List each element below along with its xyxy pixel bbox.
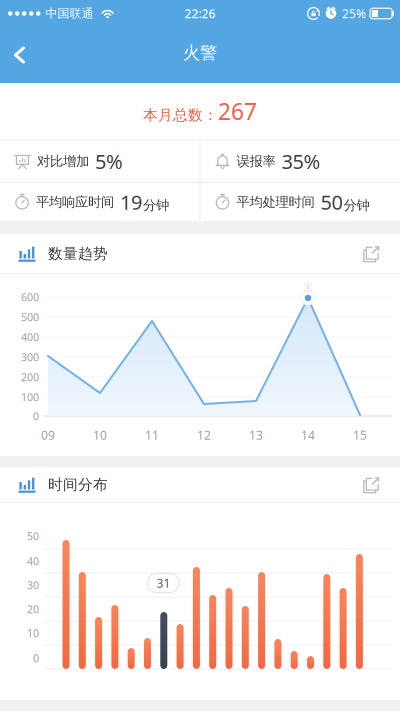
staticText: 数量趋势 — [48, 244, 108, 262]
staticText: 09 — [41, 427, 55, 443]
staticText: 平均响应时间 — [36, 194, 114, 210]
staticText: 火警 — [183, 42, 217, 64]
button[interactable] — [363, 475, 400, 493]
staticText: 19 — [120, 189, 142, 215]
staticText: 22:26 — [184, 5, 215, 21]
staticText: 100 — [21, 390, 39, 404]
staticText: 11 — [145, 427, 159, 443]
staticText: 0 — [33, 651, 39, 665]
button[interactable] — [0, 28, 26, 81]
staticText: 20 — [27, 602, 39, 616]
staticText: 误报率 — [236, 153, 275, 169]
staticText: 分钟 — [143, 197, 169, 213]
staticText: 50 — [320, 189, 342, 215]
staticText: 对比增加 — [37, 153, 89, 169]
staticText: 0 — [33, 409, 39, 423]
staticText: 10 — [93, 427, 107, 443]
staticText: 31 — [156, 575, 170, 591]
button[interactable] — [363, 244, 400, 262]
staticText: 平均处理时间 — [236, 194, 314, 210]
staticText: 中国联通 — [45, 6, 93, 21]
staticText: 500 — [21, 310, 39, 324]
staticText: 200 — [21, 370, 39, 384]
staticText: 267 — [218, 96, 257, 126]
staticText: 本月总数： — [143, 106, 218, 124]
staticText: 12 — [197, 427, 211, 443]
staticText: 分钟 — [343, 197, 369, 213]
staticText: 25% — [342, 5, 366, 21]
staticText: 40 — [27, 554, 39, 568]
staticText: 13 — [249, 427, 263, 443]
staticText: 15 — [353, 427, 367, 443]
staticText: 35% — [281, 148, 320, 175]
staticText: 30 — [27, 578, 39, 592]
staticText: 时间分布 — [48, 475, 108, 493]
staticText: 50 — [27, 529, 39, 543]
staticText: 5% — [95, 148, 123, 175]
staticText: 600 — [21, 290, 39, 304]
staticText: 14 — [301, 427, 315, 443]
staticText: 300 — [21, 350, 39, 364]
staticText: 400 — [21, 330, 39, 344]
staticText: 10 — [27, 626, 39, 640]
